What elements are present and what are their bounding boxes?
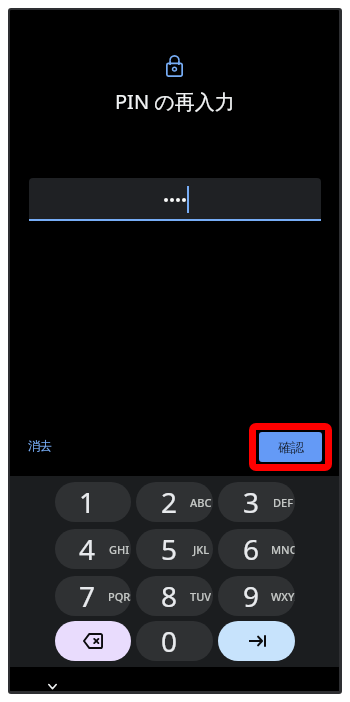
staticText: JKL [193, 542, 210, 557]
staticText: WXYZ [271, 589, 295, 604]
staticText: 4 [79, 530, 96, 568]
button[interactable]: Hide keyboard [39, 674, 65, 691]
button[interactable]: 3 [218, 482, 295, 522]
button[interactable]: 0 [136, 621, 213, 661]
staticText: 7 [79, 577, 96, 615]
button[interactable]: Next [218, 621, 295, 661]
button[interactable]: 4 [55, 529, 131, 569]
staticText: 消去 [28, 438, 52, 453]
button[interactable]: 8 [136, 576, 213, 616]
staticText: ABC [190, 495, 212, 510]
staticText: 確認 [278, 439, 304, 455]
button[interactable] [29, 178, 321, 219]
staticText: GHI [109, 542, 130, 557]
staticText: 5 [161, 530, 178, 568]
staticText: PQRS [108, 589, 131, 604]
button[interactable]: 5 [136, 529, 213, 569]
button[interactable]: 1 [55, 482, 131, 522]
staticText: 6 [243, 530, 260, 568]
staticText: 3 [243, 483, 260, 521]
button[interactable]: 確認 [259, 432, 322, 462]
staticText: DEF [273, 495, 293, 510]
staticText: 0 [161, 622, 178, 660]
staticText: 2 [161, 483, 178, 521]
button[interactable]: Backspace [55, 621, 131, 661]
staticText: MNO [271, 542, 295, 557]
staticText: 9 [243, 577, 260, 615]
button[interactable]: 9 [218, 576, 295, 616]
button[interactable]: 消去 [22, 430, 58, 460]
button[interactable]: 7 [55, 576, 131, 616]
staticText: TUV [190, 589, 212, 604]
staticText: 1 [79, 483, 96, 521]
staticText: 8 [161, 577, 178, 615]
button[interactable]: 2 [136, 482, 213, 522]
staticText: PIN の再入力 [115, 88, 235, 115]
button[interactable]: 6 [218, 529, 295, 569]
